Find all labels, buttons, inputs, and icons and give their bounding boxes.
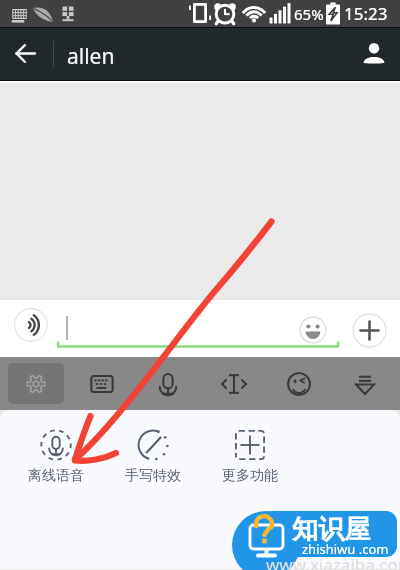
button[interactable]: 更多功能 xyxy=(210,429,290,485)
button[interactable]: Keyboard tool xyxy=(82,363,122,404)
button[interactable]: 手写特效 xyxy=(113,429,193,485)
button[interactable]: Keyboard tool xyxy=(214,363,254,404)
button[interactable]: Keyboard tool xyxy=(345,363,385,404)
staticText: 15:23 xyxy=(344,2,388,25)
staticText: allen xyxy=(67,42,115,71)
staticText: 离线语音 xyxy=(28,467,84,485)
button[interactable]: Emoji xyxy=(299,316,327,344)
staticText: www.xiazaiba.com xyxy=(266,553,400,570)
button[interactable]: Profile xyxy=(348,28,400,80)
staticText: zhishiwu .com xyxy=(302,540,389,558)
staticText: 65% xyxy=(294,4,324,24)
staticText: 手写特效 xyxy=(125,467,181,485)
button[interactable]: More xyxy=(352,313,387,348)
staticText: 知识屋 xyxy=(292,513,370,546)
button[interactable]: Back xyxy=(3,29,51,77)
button[interactable]: 离线语音 xyxy=(16,429,96,485)
button[interactable]: Keyboard tool xyxy=(279,363,319,404)
button[interactable]: Settings xyxy=(8,363,64,404)
button[interactable]: Voice input xyxy=(14,308,48,342)
staticText: 更多功能 xyxy=(222,467,278,485)
button[interactable]: Keyboard tool xyxy=(148,363,188,404)
